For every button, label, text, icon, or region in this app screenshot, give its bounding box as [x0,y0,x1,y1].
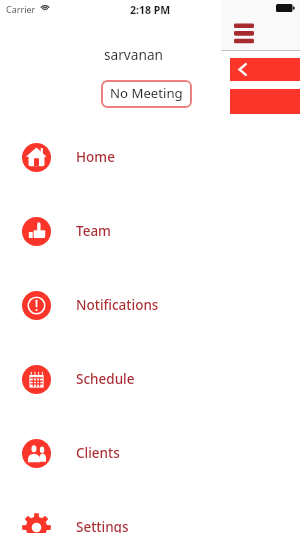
button[interactable]: Clients [0,416,221,490]
staticText: No Meeting [110,84,183,102]
staticText: Team [76,222,111,240]
staticText: Carrier [6,3,36,15]
staticText: Settings [76,518,129,533]
staticText: Home [76,148,115,166]
staticText: Notifications [76,296,159,314]
button[interactable]: Team [0,194,221,268]
button[interactable]: Settings [0,490,221,533]
button[interactable]: Back [230,58,300,81]
staticText: 2:18 PM [130,3,171,17]
staticText: Clients [76,444,120,462]
button[interactable]: Menu [232,21,256,46]
button[interactable]: No Meeting [101,80,192,108]
button[interactable]: Home [0,120,221,194]
staticText: Schedule [76,370,135,388]
staticText: sarvanan [23,45,244,64]
button[interactable]: Schedule [0,342,221,416]
button[interactable]: Notifications [0,268,221,342]
